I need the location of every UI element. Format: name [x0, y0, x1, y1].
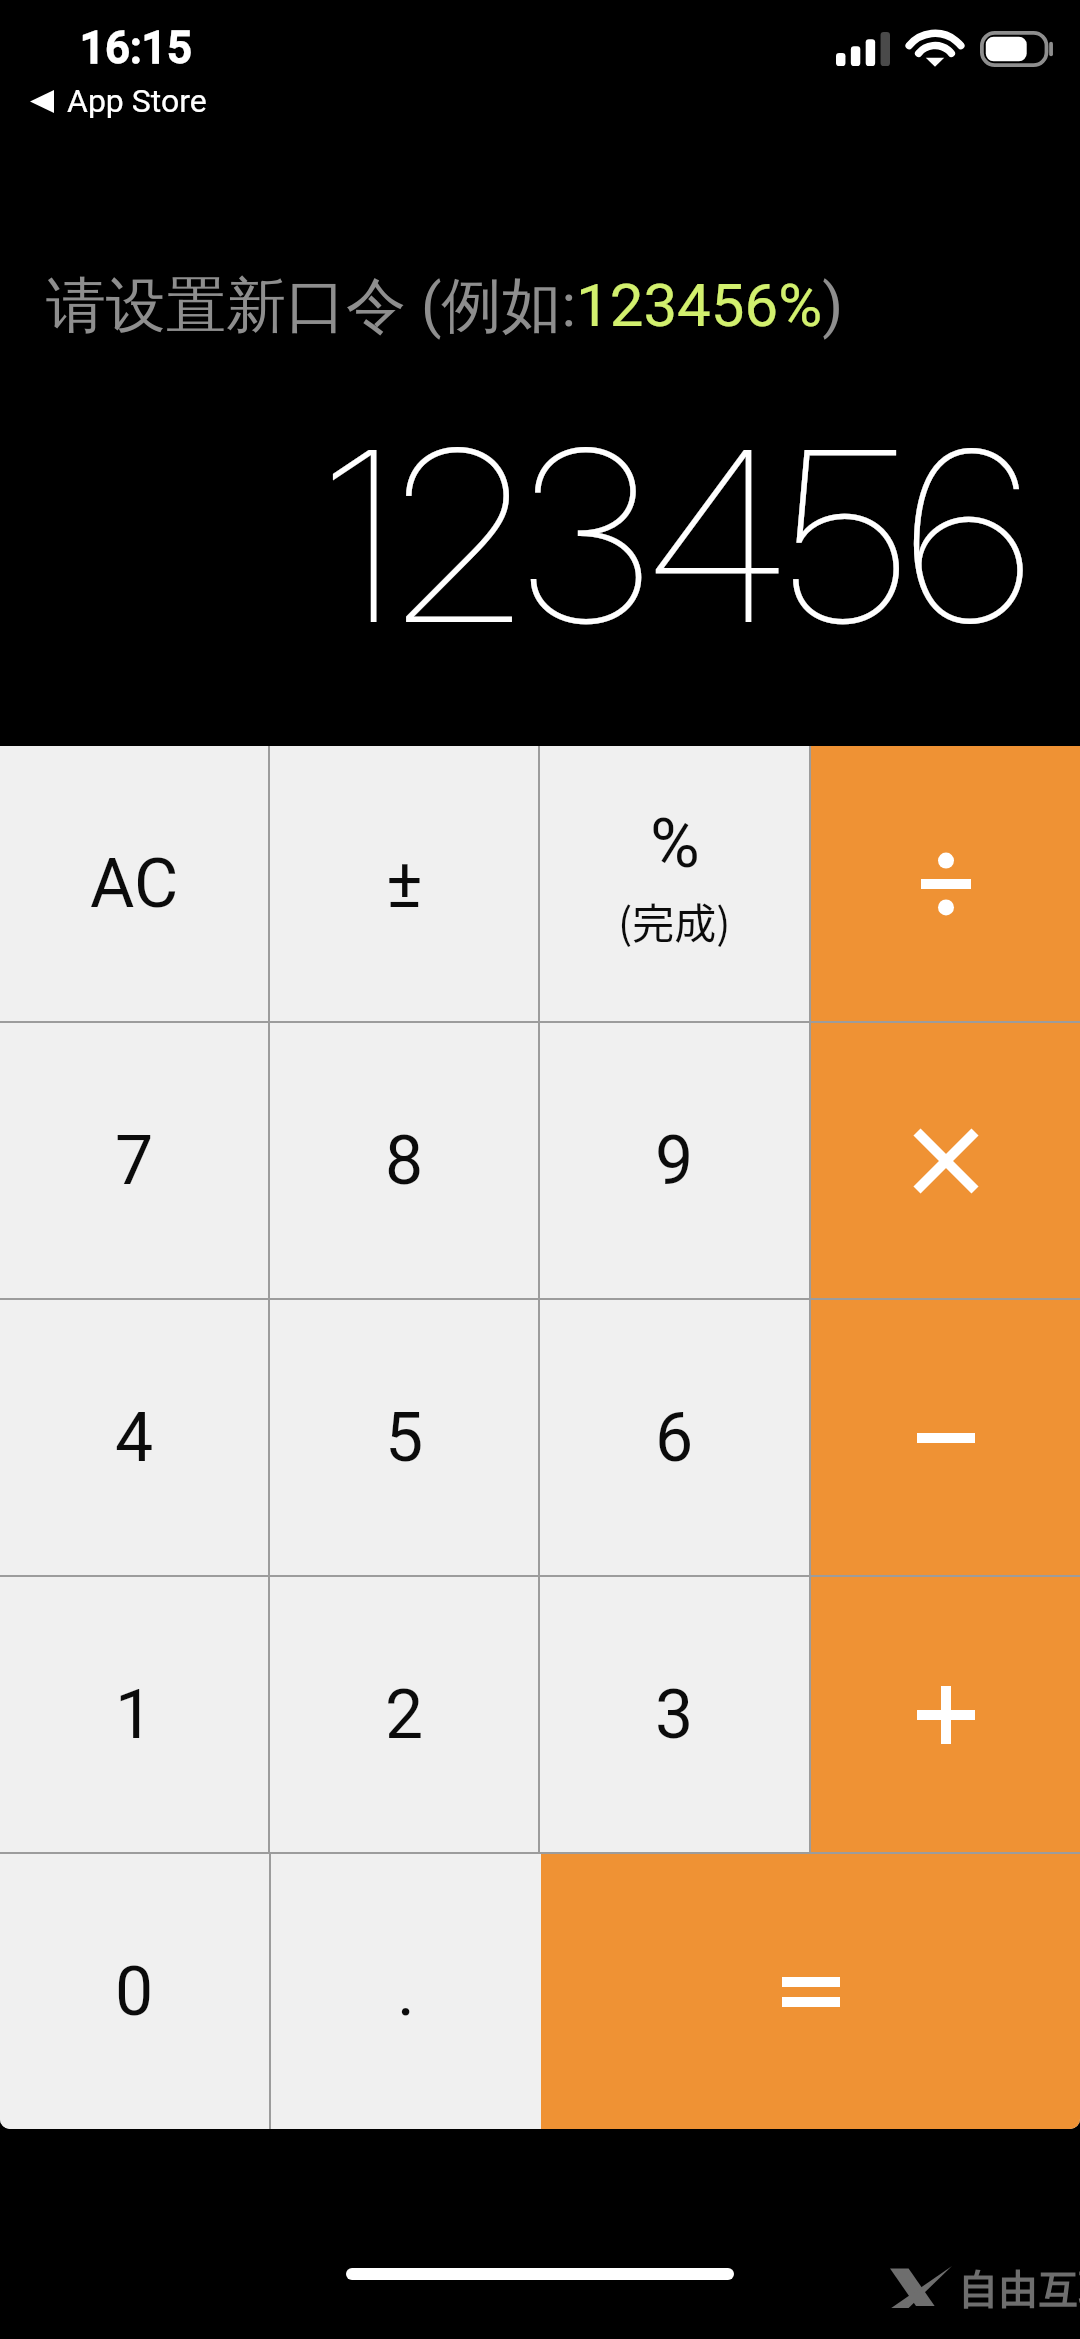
button[interactable]: 6: [540, 1300, 809, 1575]
staticText: 请设置新口令 (例如:123456%): [46, 268, 844, 344]
button[interactable]: 1: [0, 1577, 268, 1852]
button[interactable]: 2: [270, 1577, 538, 1852]
staticText: 5: [385, 1398, 424, 1478]
button[interactable]: Subtract: [811, 1300, 1080, 1575]
button[interactable]: 9: [540, 1023, 809, 1298]
button[interactable]: Back to App Store: [28, 80, 209, 122]
staticText: 2: [385, 1675, 424, 1755]
button[interactable]: Multiply: [811, 1023, 1080, 1298]
staticText: ±: [386, 844, 423, 924]
button[interactable]: Equals: [541, 1854, 1080, 2129]
button[interactable]: 4: [0, 1300, 268, 1575]
button[interactable]: 0: [0, 1854, 269, 2129]
staticText: 1: [115, 1675, 154, 1755]
staticText: 7: [115, 1121, 154, 1201]
staticText: 8: [385, 1121, 424, 1201]
staticText: .: [397, 1952, 415, 2032]
staticText: 6: [655, 1398, 694, 1478]
button[interactable]: ±: [270, 746, 538, 1021]
staticText: 123456: [0, 392, 1030, 679]
staticText: AC: [90, 844, 179, 924]
staticText: 0: [115, 1952, 154, 2032]
button[interactable]: .: [271, 1854, 541, 2129]
staticText: 9: [655, 1121, 694, 1201]
staticText: 4: [115, 1398, 154, 1478]
staticText: App Store: [67, 82, 207, 120]
staticText: %: [650, 804, 700, 884]
button[interactable]: 7: [0, 1023, 268, 1298]
button[interactable]: Divide: [811, 746, 1080, 1021]
button[interactable]: Add: [811, 1577, 1080, 1852]
button[interactable]: 3: [540, 1577, 809, 1852]
button[interactable]: AC: [0, 746, 268, 1021]
button[interactable]: %: [540, 746, 809, 1021]
staticText: 16:15: [80, 22, 192, 74]
button[interactable]: 8: [270, 1023, 538, 1298]
button[interactable]: 5: [270, 1300, 538, 1575]
staticText: (完成): [618, 890, 731, 951]
staticText: 自由互联: [958, 2258, 1080, 2316]
staticText: 3: [655, 1675, 694, 1755]
